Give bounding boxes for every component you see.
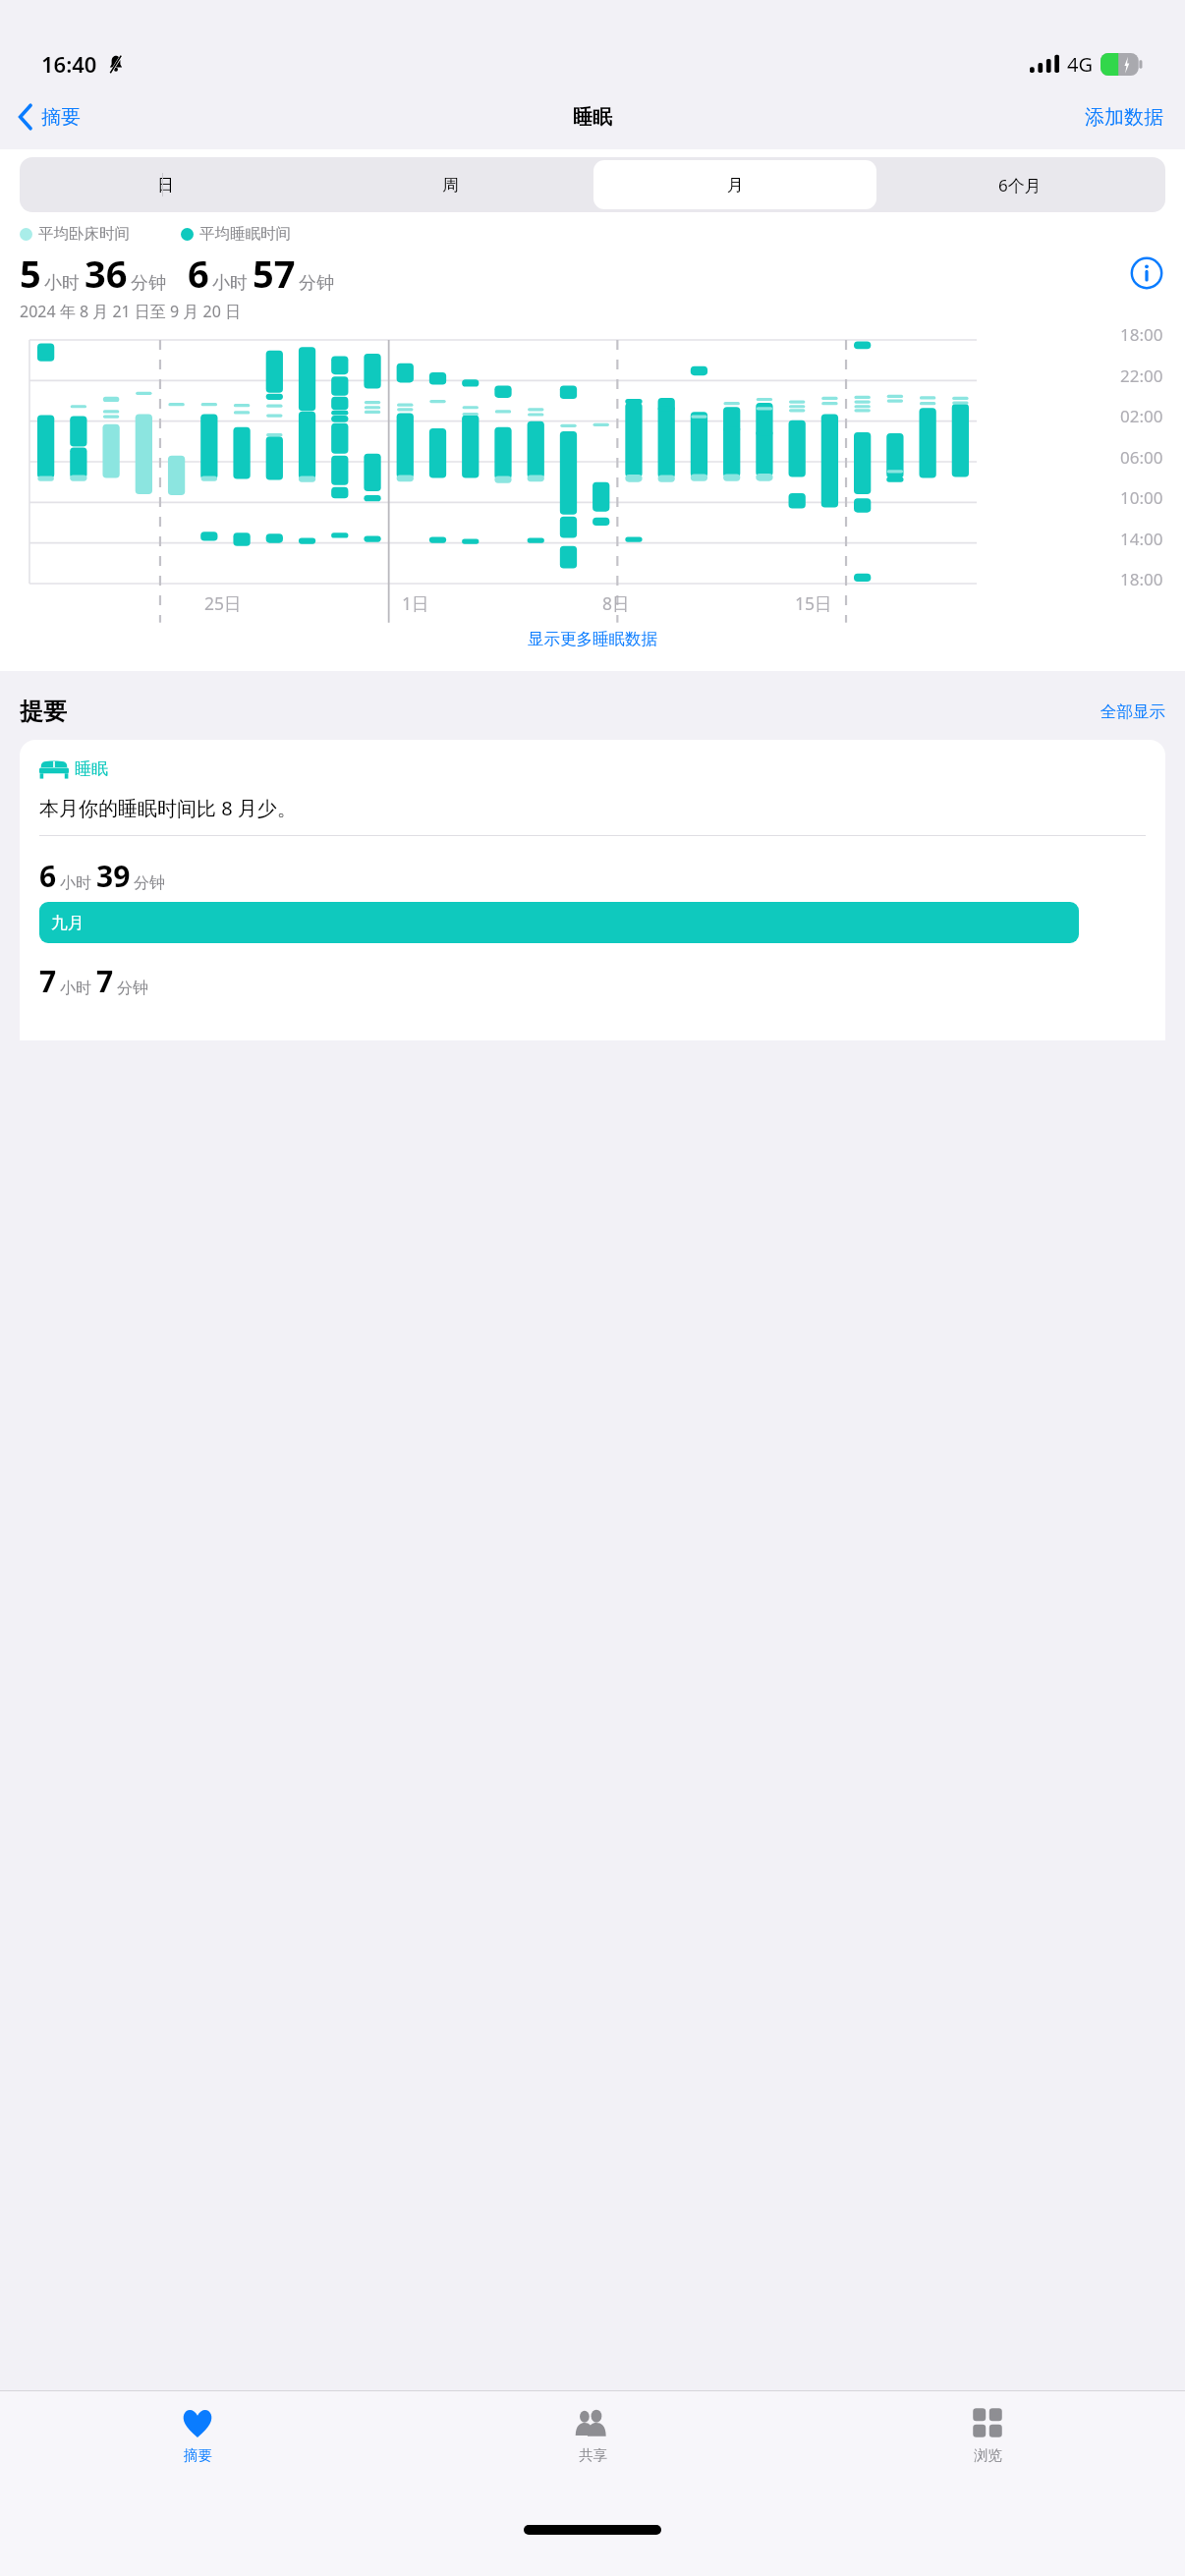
staticText: 39: [96, 856, 131, 896]
staticText: 06:00: [1120, 446, 1163, 469]
button[interactable]: 摘要: [12, 97, 86, 137]
staticText: 分钟: [117, 979, 148, 998]
staticText: 7: [39, 961, 57, 1001]
staticText: 分钟: [134, 873, 165, 893]
staticText: 小时: [212, 272, 248, 295]
button[interactable]: 摘要: [0, 2391, 395, 2464]
button[interactable]: 睡眠: [20, 740, 1165, 1040]
staticText: 平均卧床时间: [38, 224, 130, 244]
staticText: 本月你的睡眠时间比 8 月少。: [39, 795, 297, 821]
staticText: 小时: [44, 272, 80, 295]
staticText: 睡眠: [573, 105, 612, 130]
staticText: 5: [20, 248, 41, 299]
staticText: 九月: [51, 913, 85, 933]
staticText: 平均睡眠时间: [199, 224, 291, 244]
staticText: 22:00: [1120, 364, 1163, 387]
staticText: 10:00: [1120, 486, 1163, 509]
staticText: 16:40: [41, 49, 97, 79]
button[interactable]: 6个月: [878, 160, 1161, 209]
button[interactable]: 全部显示: [1100, 701, 1165, 722]
staticText: 全部显示: [1100, 701, 1165, 722]
staticText: 共享: [579, 2446, 607, 2464]
staticText: 36: [85, 248, 128, 299]
button[interactable]: 浏览: [790, 2391, 1185, 2464]
staticText: 6: [39, 856, 57, 896]
staticText: 7: [96, 961, 114, 1001]
staticText: 8日: [602, 591, 630, 615]
staticText: 分钟: [131, 272, 166, 295]
staticText: 提要: [20, 697, 67, 726]
staticText: 02:00: [1120, 405, 1163, 427]
staticText: 摘要: [41, 105, 81, 130]
staticText: 15日: [795, 591, 832, 615]
staticText: 周: [442, 175, 459, 196]
button[interactable]: 显示更多睡眠数据: [0, 623, 1185, 655]
staticText: 日: [157, 175, 174, 196]
button[interactable]: Information: [1128, 254, 1165, 292]
staticText: 1日: [402, 591, 429, 615]
staticText: 4G: [1067, 51, 1093, 78]
staticText: 25日: [204, 591, 242, 615]
staticText: 睡眠: [75, 758, 108, 779]
staticText: 14:00: [1120, 528, 1163, 550]
staticText: 2024 年 8 月 21 日至 9 月 20 日: [20, 301, 241, 322]
staticText: 18:00: [1120, 323, 1163, 346]
button[interactable]: 周: [309, 160, 592, 209]
staticText: 浏览: [974, 2446, 1002, 2464]
staticText: 小时: [60, 979, 91, 998]
staticText: 6个月: [998, 174, 1042, 196]
button[interactable]: 共享: [395, 2391, 790, 2464]
button[interactable]: 添加数据: [1081, 99, 1167, 136]
staticText: 6: [188, 248, 209, 299]
staticText: 18:00: [1120, 568, 1163, 590]
staticText: 小时: [60, 873, 91, 893]
staticText: 添加数据: [1085, 105, 1163, 130]
button[interactable]: 日: [24, 160, 307, 209]
staticText: 摘要: [184, 2446, 212, 2464]
staticText: 月: [727, 175, 744, 196]
staticText: 57: [253, 248, 296, 299]
staticText: 分钟: [299, 272, 334, 295]
button[interactable]: 月: [593, 160, 876, 209]
staticText: 显示更多睡眠数据: [528, 629, 657, 649]
